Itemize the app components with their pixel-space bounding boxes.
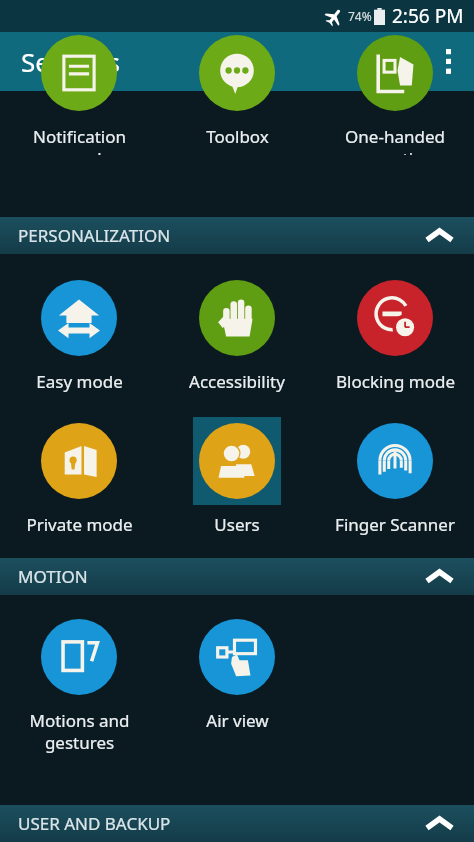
button[interactable]: Motions and gestures [0, 613, 158, 754]
staticText: PERSONALIZATION [18, 224, 171, 247]
button[interactable]: MOTION [0, 558, 474, 595]
button[interactable]: One-handed operation [316, 29, 474, 155]
staticText: Air view [206, 709, 269, 732]
staticText: Blocking mode [336, 370, 455, 393]
staticText: Easy mode [36, 370, 123, 393]
staticText: Users [214, 513, 260, 536]
staticText: Private mode [26, 513, 133, 536]
staticText: Finger Scanner [335, 513, 455, 536]
button[interactable]: More options [422, 32, 474, 91]
other: Collapse PERSONALIZATION [427, 229, 452, 242]
staticText: Motions and gestures [29, 709, 130, 754]
button[interactable]: Blocking mode [316, 274, 474, 393]
button[interactable]: Users [158, 417, 316, 536]
staticText: MOTION [18, 565, 88, 588]
staticText: 74% [348, 8, 372, 24]
staticText: Settings [21, 44, 120, 79]
button[interactable]: Private mode [0, 417, 158, 536]
staticText: Toolbox [206, 125, 269, 148]
button[interactable]: Easy mode [0, 274, 158, 393]
staticText: Accessibility [189, 370, 285, 393]
button[interactable]: Toolbox [158, 29, 316, 148]
staticText: USER AND BACKUP [18, 812, 171, 835]
button[interactable]: Notification panel [0, 29, 158, 155]
button[interactable]: USER AND BACKUP [0, 805, 474, 842]
button[interactable]: Finger Scanner [316, 417, 474, 536]
button[interactable]: Accessibility [158, 274, 316, 393]
staticText: One-handed operation [345, 125, 445, 155]
button[interactable]: Air view [158, 613, 316, 732]
staticText: Notification panel [33, 125, 126, 155]
other: Collapse USER AND BACKUP [427, 817, 452, 830]
button[interactable]: Search [361, 32, 421, 91]
staticText: 2:56 PM [392, 3, 464, 29]
other: Collapse MOTION [427, 570, 452, 583]
button[interactable]: PERSONALIZATION [0, 217, 474, 254]
